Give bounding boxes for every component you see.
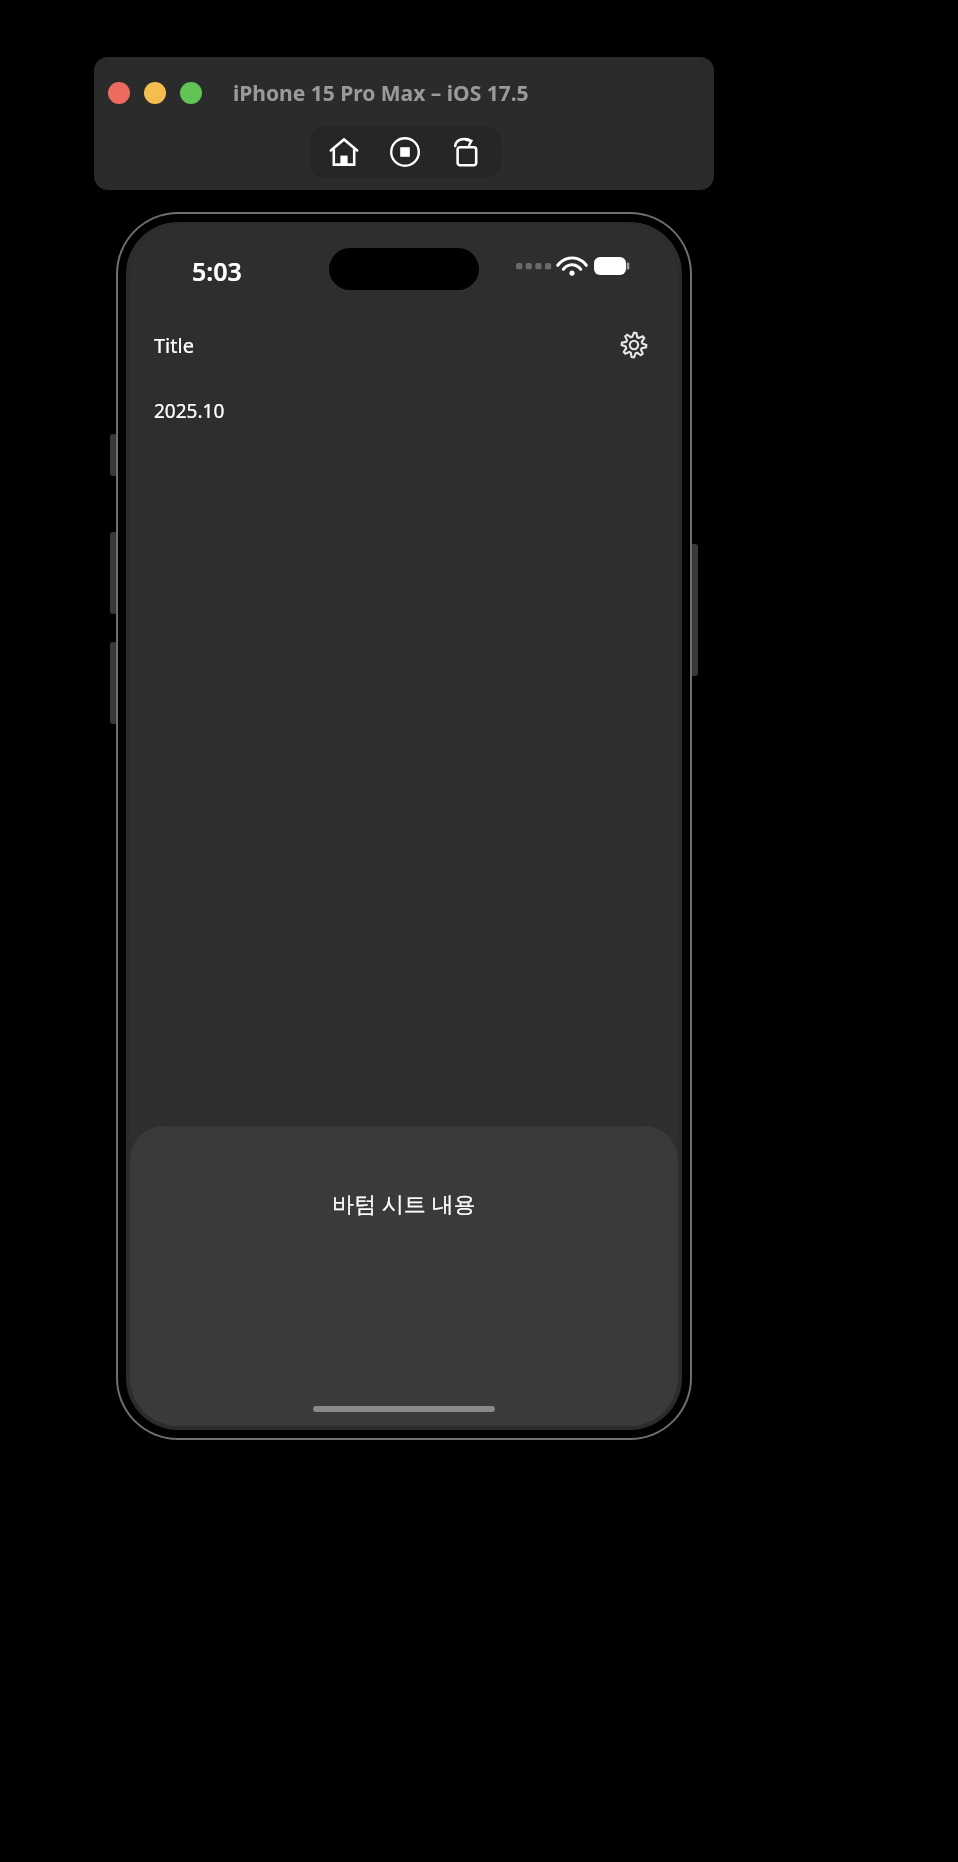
staticText: iPhone 15 Pro Max – iOS 17.5 <box>233 79 529 108</box>
button[interactable]: Home <box>323 131 365 173</box>
button[interactable] <box>144 82 166 104</box>
button[interactable]: Title <box>154 332 194 359</box>
staticText: 2025.10 <box>154 398 225 424</box>
button[interactable]: Settings <box>614 325 654 365</box>
button[interactable]: Rotate <box>445 131 487 173</box>
staticText: 바텀 시트 내용 <box>332 1188 476 1218</box>
button[interactable] <box>108 82 130 104</box>
button[interactable]: Record <box>384 131 426 173</box>
staticText: 5:03 <box>192 254 242 288</box>
button[interactable] <box>180 82 202 104</box>
button[interactable]: 바텀 시트 내용 <box>130 1126 678 1426</box>
